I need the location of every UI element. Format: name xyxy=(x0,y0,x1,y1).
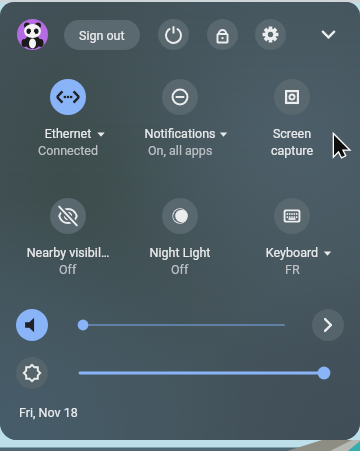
button[interactable]: Ethernet xyxy=(12,79,124,158)
button[interactable]: Sign out xyxy=(64,20,140,50)
button[interactable]: Volume xyxy=(16,309,48,341)
button[interactable]: Account avatar xyxy=(17,19,48,50)
staticText: On, all apps xyxy=(148,143,213,158)
button[interactable]: Collapse menu xyxy=(313,19,344,50)
button[interactable]: Nearby visibil… xyxy=(12,198,124,277)
button[interactable]: Lock screen xyxy=(207,19,238,50)
button[interactable]: Audio settings xyxy=(312,309,344,341)
button[interactable]: Notifications xyxy=(124,79,236,158)
staticText: Sign out xyxy=(79,28,125,43)
staticText: Notifications xyxy=(124,126,236,141)
staticText: FR xyxy=(285,262,300,277)
button[interactable]: Power xyxy=(158,19,189,50)
staticText: Fri, Nov 18 xyxy=(19,405,78,420)
button[interactable]: Night Light xyxy=(124,198,236,277)
staticText: Keyboard xyxy=(236,245,348,260)
staticText: Nearby visibil… xyxy=(12,245,124,260)
button[interactable]: Brightness xyxy=(16,357,48,389)
staticText: Screen capture xyxy=(236,126,348,158)
staticText: Ethernet xyxy=(12,126,124,141)
button[interactable]: Settings xyxy=(255,19,286,50)
staticText: Night Light xyxy=(124,245,236,260)
staticText: Off xyxy=(171,262,189,277)
button[interactable]: Screen capture xyxy=(236,79,348,158)
staticText: Off xyxy=(59,262,77,277)
staticText: Connected xyxy=(38,143,99,158)
button[interactable]: Keyboard xyxy=(236,198,348,277)
